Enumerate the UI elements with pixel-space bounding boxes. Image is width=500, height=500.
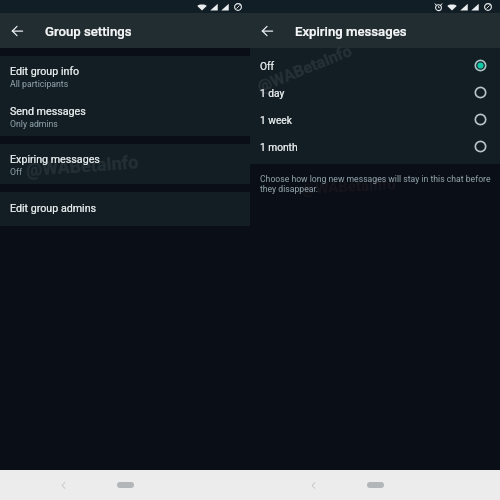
staticText: Only admins bbox=[10, 119, 58, 129]
staticText: Expiring messages bbox=[295, 24, 407, 39]
button[interactable]: 1 day bbox=[250, 79, 500, 106]
staticText: Edit group info bbox=[10, 65, 80, 78]
button[interactable]: Home bbox=[367, 482, 384, 488]
button[interactable]: Edit group info bbox=[0, 56, 250, 96]
staticText: 1 month bbox=[260, 142, 298, 154]
staticText: 1 week bbox=[260, 115, 292, 127]
button[interactable]: Back bbox=[250, 13, 285, 48]
staticText: All participants bbox=[10, 79, 69, 89]
button[interactable]: 1 week bbox=[250, 106, 500, 133]
button[interactable]: Back bbox=[0, 13, 35, 48]
staticText: Off bbox=[260, 61, 275, 73]
button[interactable]: Off bbox=[250, 52, 500, 79]
staticText: @WABetaInfo bbox=[301, 175, 396, 198]
staticText: Edit group admins bbox=[10, 202, 97, 215]
other: watermark bbox=[0, 0, 500, 500]
staticText: Off bbox=[10, 167, 23, 177]
staticText: Group settings bbox=[45, 24, 132, 39]
button[interactable]: Home bbox=[117, 482, 134, 488]
button[interactable]: 1 month bbox=[250, 133, 500, 160]
button[interactable]: Back bbox=[305, 477, 321, 493]
staticText: 1 day bbox=[260, 88, 285, 100]
staticText: @WABetaInfo bbox=[25, 151, 139, 180]
staticText: Expiring messages bbox=[10, 153, 100, 166]
button[interactable]: Back bbox=[55, 477, 71, 493]
staticText: Choose how long new messages will stay i… bbox=[260, 174, 495, 195]
button[interactable]: Expiring messages bbox=[0, 144, 250, 184]
staticText: Send messages bbox=[10, 105, 86, 118]
staticText: @WABetaInfo bbox=[254, 41, 354, 96]
button[interactable]: Send messages bbox=[0, 96, 250, 136]
button[interactable]: Edit group admins bbox=[0, 192, 250, 226]
